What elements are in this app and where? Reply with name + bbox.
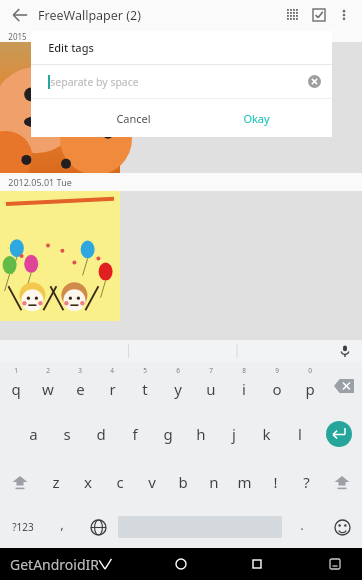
staticText: 2 bbox=[46, 366, 50, 375]
staticText: z bbox=[52, 472, 60, 492]
button[interactable]: f bbox=[118, 410, 151, 458]
button[interactable]: Select all bbox=[306, 2, 332, 28]
button[interactable]: 6 bbox=[161, 362, 194, 410]
staticText: y bbox=[174, 379, 182, 399]
button[interactable]: Home bbox=[166, 549, 196, 579]
staticText: 0 bbox=[308, 366, 312, 375]
button[interactable]: v bbox=[136, 458, 167, 506]
button[interactable]: Back bbox=[96, 555, 114, 573]
staticText: 6 bbox=[176, 366, 180, 375]
button[interactable]: g bbox=[151, 410, 184, 458]
button[interactable]: 1 bbox=[0, 362, 32, 410]
staticText: 4 bbox=[110, 366, 114, 375]
staticText: p bbox=[305, 379, 315, 399]
button[interactable]: Recent apps bbox=[242, 549, 272, 579]
button[interactable]: 8 bbox=[227, 362, 260, 410]
button[interactable]: b bbox=[167, 458, 198, 506]
staticText: j bbox=[232, 424, 236, 444]
staticText: c bbox=[116, 472, 124, 492]
button[interactable]: d bbox=[84, 410, 118, 458]
staticText: ! bbox=[273, 472, 278, 492]
button[interactable]: Hide keyboard bbox=[322, 551, 348, 577]
staticText: n bbox=[209, 472, 219, 492]
button[interactable]: 9 bbox=[260, 362, 293, 410]
button[interactable]: Enter bbox=[316, 410, 362, 458]
button[interactable]: , bbox=[46, 506, 78, 548]
staticText: l bbox=[298, 424, 302, 444]
staticText: , bbox=[60, 515, 64, 533]
staticText: g bbox=[163, 424, 173, 444]
staticText: h bbox=[196, 424, 206, 444]
button[interactable]: Backspace bbox=[326, 362, 362, 410]
staticText: ?123 bbox=[12, 520, 34, 534]
staticText: d bbox=[96, 424, 106, 444]
staticText: o bbox=[272, 379, 282, 399]
staticText: Cancel bbox=[116, 111, 151, 126]
button[interactable]: . bbox=[282, 506, 322, 548]
button[interactable]: x bbox=[72, 458, 104, 506]
staticText: 8 bbox=[242, 366, 246, 375]
button[interactable]: Change language bbox=[78, 506, 118, 548]
button[interactable]: Shift bbox=[322, 458, 362, 506]
button[interactable]: c bbox=[104, 458, 136, 506]
staticText: Edit tags bbox=[48, 40, 94, 55]
button[interactable]: k bbox=[250, 410, 283, 458]
button[interactable]: m bbox=[229, 458, 260, 506]
button[interactable]: More options bbox=[332, 3, 356, 27]
button[interactable]: Voice input bbox=[338, 344, 352, 358]
button[interactable]: l bbox=[283, 410, 316, 458]
button[interactable]: 5 bbox=[128, 362, 161, 410]
button[interactable]: 2 bbox=[32, 362, 64, 410]
button[interactable]: z bbox=[40, 458, 72, 506]
staticText: separate by space bbox=[50, 75, 139, 89]
button[interactable]: h bbox=[184, 410, 217, 458]
button[interactable]: 3 bbox=[64, 362, 96, 410]
button[interactable]: 7 bbox=[194, 362, 227, 410]
staticText: . bbox=[300, 516, 304, 534]
button[interactable]: Back bbox=[8, 3, 32, 27]
button[interactable]: n bbox=[198, 458, 229, 506]
button[interactable]: Cancel bbox=[106, 105, 161, 132]
staticText: e bbox=[76, 379, 85, 399]
staticText: GetAndroidIR bbox=[10, 555, 99, 574]
staticText: k bbox=[262, 424, 271, 444]
button[interactable]: ? bbox=[291, 458, 322, 506]
button[interactable]: a bbox=[16, 410, 50, 458]
staticText: b bbox=[178, 472, 188, 492]
button[interactable]: j bbox=[217, 410, 250, 458]
button[interactable]: 0 bbox=[293, 362, 326, 410]
staticText: i bbox=[242, 379, 246, 399]
staticText: 5 bbox=[143, 366, 147, 375]
staticText: Okay bbox=[243, 111, 270, 126]
button[interactable]: s bbox=[50, 410, 84, 458]
staticText: r bbox=[109, 379, 116, 399]
staticText: s bbox=[63, 424, 71, 444]
button[interactable]: Shift bbox=[0, 458, 40, 506]
staticText: 2015 bbox=[8, 31, 27, 42]
staticText: v bbox=[148, 472, 156, 492]
staticText: 9 bbox=[275, 366, 279, 375]
staticText: w bbox=[42, 379, 54, 399]
button[interactable]: separate by space bbox=[31, 65, 332, 98]
staticText: u bbox=[206, 379, 216, 399]
staticText: m bbox=[237, 472, 252, 492]
button[interactable]: Okay bbox=[233, 105, 280, 132]
staticText: q bbox=[11, 379, 21, 399]
button[interactable]: Grid view bbox=[280, 2, 306, 28]
staticText: 3 bbox=[78, 366, 82, 375]
staticText: 1 bbox=[14, 366, 18, 375]
button[interactable]: Emoji bbox=[322, 506, 362, 548]
staticText: ? bbox=[303, 472, 310, 492]
button[interactable]: ! bbox=[260, 458, 291, 506]
staticText: f bbox=[132, 424, 138, 444]
staticText: 2012.05.01 Tue bbox=[8, 176, 72, 188]
staticText: t bbox=[142, 379, 148, 399]
button[interactable]: 4 bbox=[96, 362, 128, 410]
button[interactable]: ?123 bbox=[0, 506, 46, 548]
button[interactable]: Clear text bbox=[308, 75, 321, 88]
staticText: 7 bbox=[209, 366, 213, 375]
staticText: a bbox=[29, 424, 38, 444]
staticText: x bbox=[84, 472, 92, 492]
staticText: FreeWallpaper (2) bbox=[38, 7, 141, 24]
